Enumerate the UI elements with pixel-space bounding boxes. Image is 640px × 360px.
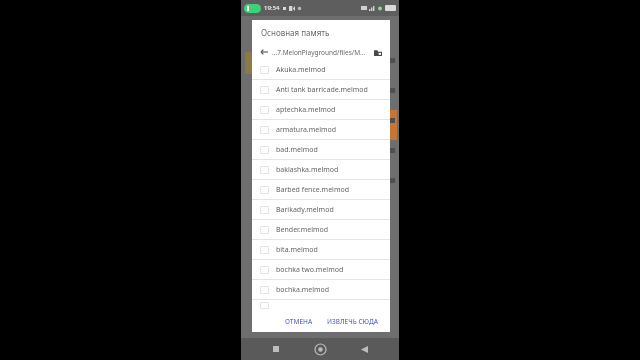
staticText: bad.melmod: [276, 145, 318, 155]
button[interactable]: Anti tank barricade.melmod: [252, 80, 390, 100]
staticText: bochka two.melmod: [276, 265, 344, 275]
button[interactable]: bad.melmod: [252, 140, 390, 160]
staticText: 19:54: [264, 4, 280, 12]
button[interactable]: New folder: [372, 46, 384, 58]
staticText: Barbed fence.melmod: [276, 185, 349, 195]
staticText: Bender.melmod: [276, 225, 329, 235]
button[interactable]: bochka.melmod: [252, 280, 390, 300]
button[interactable]: ОТМЕНА: [281, 314, 317, 329]
button[interactable]: Barbed fence.melmod: [252, 180, 390, 200]
button[interactable]: Bender.melmod: [252, 220, 390, 240]
staticText: Barikady.melmod: [276, 205, 334, 215]
button[interactable]: Barikady.melmod: [252, 200, 390, 220]
staticText: ОТМЕНА: [285, 317, 313, 326]
staticText: baklashka.melmod: [276, 165, 339, 175]
staticText: Akuka.melmod: [276, 65, 326, 75]
button[interactable]: Akuka.melmod: [252, 60, 390, 80]
button[interactable]: baklashka.melmod: [252, 160, 390, 180]
button[interactable]: Recents: [267, 340, 285, 358]
staticText: Anti tank barricade.melmod: [276, 85, 368, 95]
button[interactable]: bochka two.melmod: [252, 260, 390, 280]
button[interactable]: ИЗВЛЕЧЬ СЮДА: [323, 314, 383, 329]
button[interactable]: bita.melmod: [252, 240, 390, 260]
button[interactable]: Back: [258, 46, 270, 58]
staticText: armatura.melmod: [276, 125, 337, 135]
button[interactable]: armatura.melmod: [252, 120, 390, 140]
staticText: Основная память: [261, 27, 330, 38]
staticText: bochka.melmod: [276, 285, 330, 295]
staticText: aptechka.melmod: [276, 105, 336, 115]
staticText: ИЗВЛЕЧЬ СЮДА: [327, 317, 379, 326]
button[interactable]: Back: [355, 340, 373, 358]
staticText: ...7.MelonPlayground/files/Mods: [272, 48, 369, 57]
staticText: bita.melmod: [276, 245, 318, 255]
button[interactable]: Home: [311, 340, 329, 358]
button[interactable]: aptechka.melmod: [252, 100, 390, 120]
